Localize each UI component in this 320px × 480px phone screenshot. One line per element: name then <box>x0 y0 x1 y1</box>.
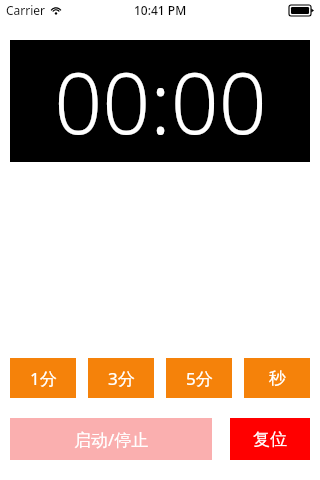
button[interactable]: 启动/停止 <box>10 418 212 460</box>
button[interactable]: 3分 <box>88 358 154 398</box>
button[interactable]: 1分 <box>10 358 76 398</box>
button[interactable]: 秒 <box>244 358 310 398</box>
staticText: 3分 <box>108 367 135 390</box>
staticText: 1分 <box>30 367 57 390</box>
staticText: 秒 <box>269 368 286 389</box>
button[interactable]: 复位 <box>230 418 310 460</box>
staticText: Carrier <box>6 2 46 18</box>
staticText: 10:41 PM <box>134 2 187 18</box>
staticText: 启动/停止 <box>74 428 149 451</box>
staticText: 复位 <box>253 429 287 450</box>
staticText: 5分 <box>186 367 213 390</box>
button[interactable]: 5分 <box>166 358 232 398</box>
staticText: 00:00 <box>54 44 267 158</box>
